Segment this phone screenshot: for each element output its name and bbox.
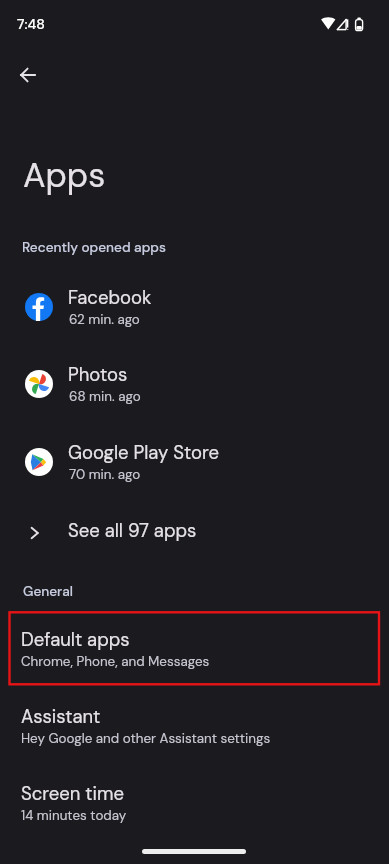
staticText: Hey Google and other Assistant settings [21, 730, 271, 747]
staticText: See all 97 apps [68, 519, 197, 543]
staticText: 7:48 [17, 15, 45, 33]
staticText: Recently opened apps [22, 239, 166, 257]
staticText: Apps [23, 153, 106, 197]
staticText: 14 minutes today [21, 807, 127, 824]
staticText: Assistant [21, 705, 101, 729]
button[interactable]: Back [4, 51, 52, 99]
staticText: Chrome, Phone, and Messages [21, 653, 210, 670]
button[interactable]: Screen time [0, 768, 389, 840]
staticText: Google Play Store [68, 441, 219, 465]
staticText: 62 min. ago [69, 311, 140, 328]
button[interactable]: Facebook [0, 278, 389, 336]
button[interactable]: Google Play Store [0, 433, 389, 491]
button[interactable]: Assistant [0, 690, 389, 762]
staticText: Default apps [21, 628, 130, 652]
staticText: General [23, 583, 74, 601]
staticText: Screen time [21, 782, 125, 806]
staticText: 70 min. ago [69, 466, 141, 483]
staticText: Photos [68, 363, 128, 387]
button[interactable]: Default apps [0, 613, 389, 685]
button[interactable]: Photos [0, 355, 389, 413]
button[interactable]: See all 97 apps [0, 508, 389, 554]
staticText: Facebook [68, 286, 152, 310]
staticText: 68 min. ago [69, 388, 141, 405]
